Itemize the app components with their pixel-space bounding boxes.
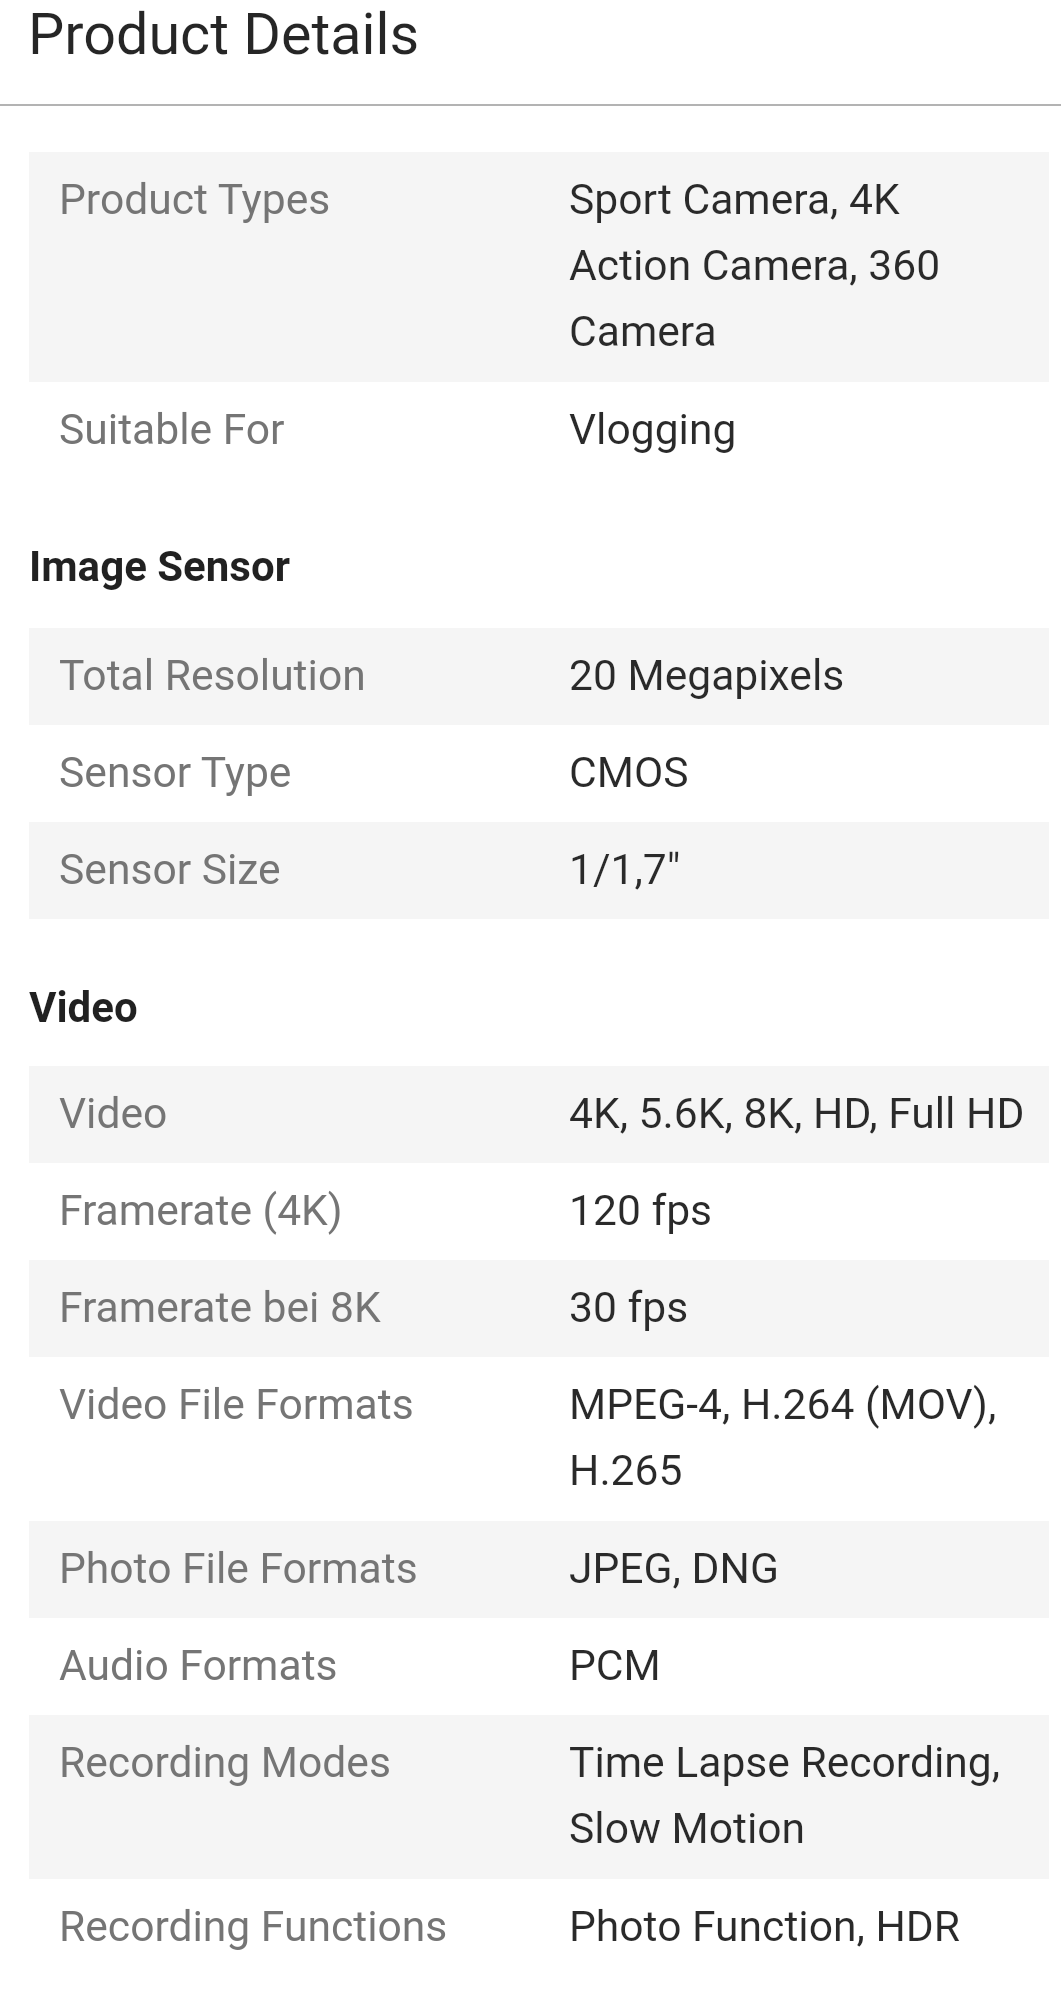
staticText: 120 fps: [569, 1173, 1027, 1239]
button[interactable]: Suitable For: [29, 382, 1049, 479]
staticText: Product Types: [59, 162, 569, 228]
button[interactable]: Product Types: [29, 152, 1049, 382]
staticText: CMOS: [569, 735, 1027, 801]
staticText: 30 fps: [569, 1270, 1027, 1336]
staticText: Image Sensor: [29, 542, 291, 591]
staticText: Photo Function, HDR: [569, 1889, 1027, 1955]
button[interactable]: Video File Formats: [29, 1357, 1049, 1521]
button[interactable]: Framerate (4K): [29, 1163, 1049, 1260]
button[interactable]: Recording Modes: [29, 1715, 1049, 1879]
staticText: Framerate (4K): [59, 1173, 569, 1239]
staticText: Vlogging: [569, 392, 1027, 458]
staticText: Video: [29, 983, 138, 1032]
button[interactable]: Sensor Size: [29, 822, 1049, 919]
staticText: Sport Camera, 4K Action Camera, 360 Came…: [569, 162, 1027, 360]
staticText: Video: [59, 1076, 569, 1142]
staticText: Audio Formats: [59, 1628, 569, 1694]
staticText: 20 Megapixels: [569, 638, 1027, 704]
staticText: Time Lapse Recording, Slow Motion: [569, 1725, 1027, 1857]
button[interactable]: Recording Functions: [29, 1879, 1049, 1976]
button[interactable]: Video: [29, 1066, 1049, 1163]
staticText: Photo File Formats: [59, 1531, 569, 1597]
staticText: MPEG-4, H.264 (MOV), H.265: [569, 1367, 1027, 1499]
staticText: Recording Modes: [59, 1725, 569, 1791]
staticText: Total Resolution: [59, 638, 569, 704]
staticText: Suitable For: [59, 392, 569, 458]
staticText: Sensor Type: [59, 735, 569, 801]
button[interactable]: Audio Formats: [29, 1618, 1049, 1715]
button[interactable]: Total Resolution: [29, 628, 1049, 725]
staticText: PCM: [569, 1628, 1027, 1694]
button[interactable]: Sensor Type: [29, 725, 1049, 822]
staticText: 4K, 5.6K, 8K, HD, Full HD: [569, 1076, 1027, 1142]
staticText: Video File Formats: [59, 1367, 569, 1433]
staticText: Product Details: [28, 1, 420, 68]
button[interactable]: Framerate bei 8K: [29, 1260, 1049, 1357]
staticText: Framerate bei 8K: [59, 1270, 569, 1336]
button[interactable]: Photo File Formats: [29, 1521, 1049, 1618]
staticText: Sensor Size: [59, 832, 569, 898]
staticText: 1/1,7": [569, 832, 1027, 898]
staticText: JPEG, DNG: [569, 1531, 1027, 1597]
staticText: Recording Functions: [59, 1889, 569, 1955]
